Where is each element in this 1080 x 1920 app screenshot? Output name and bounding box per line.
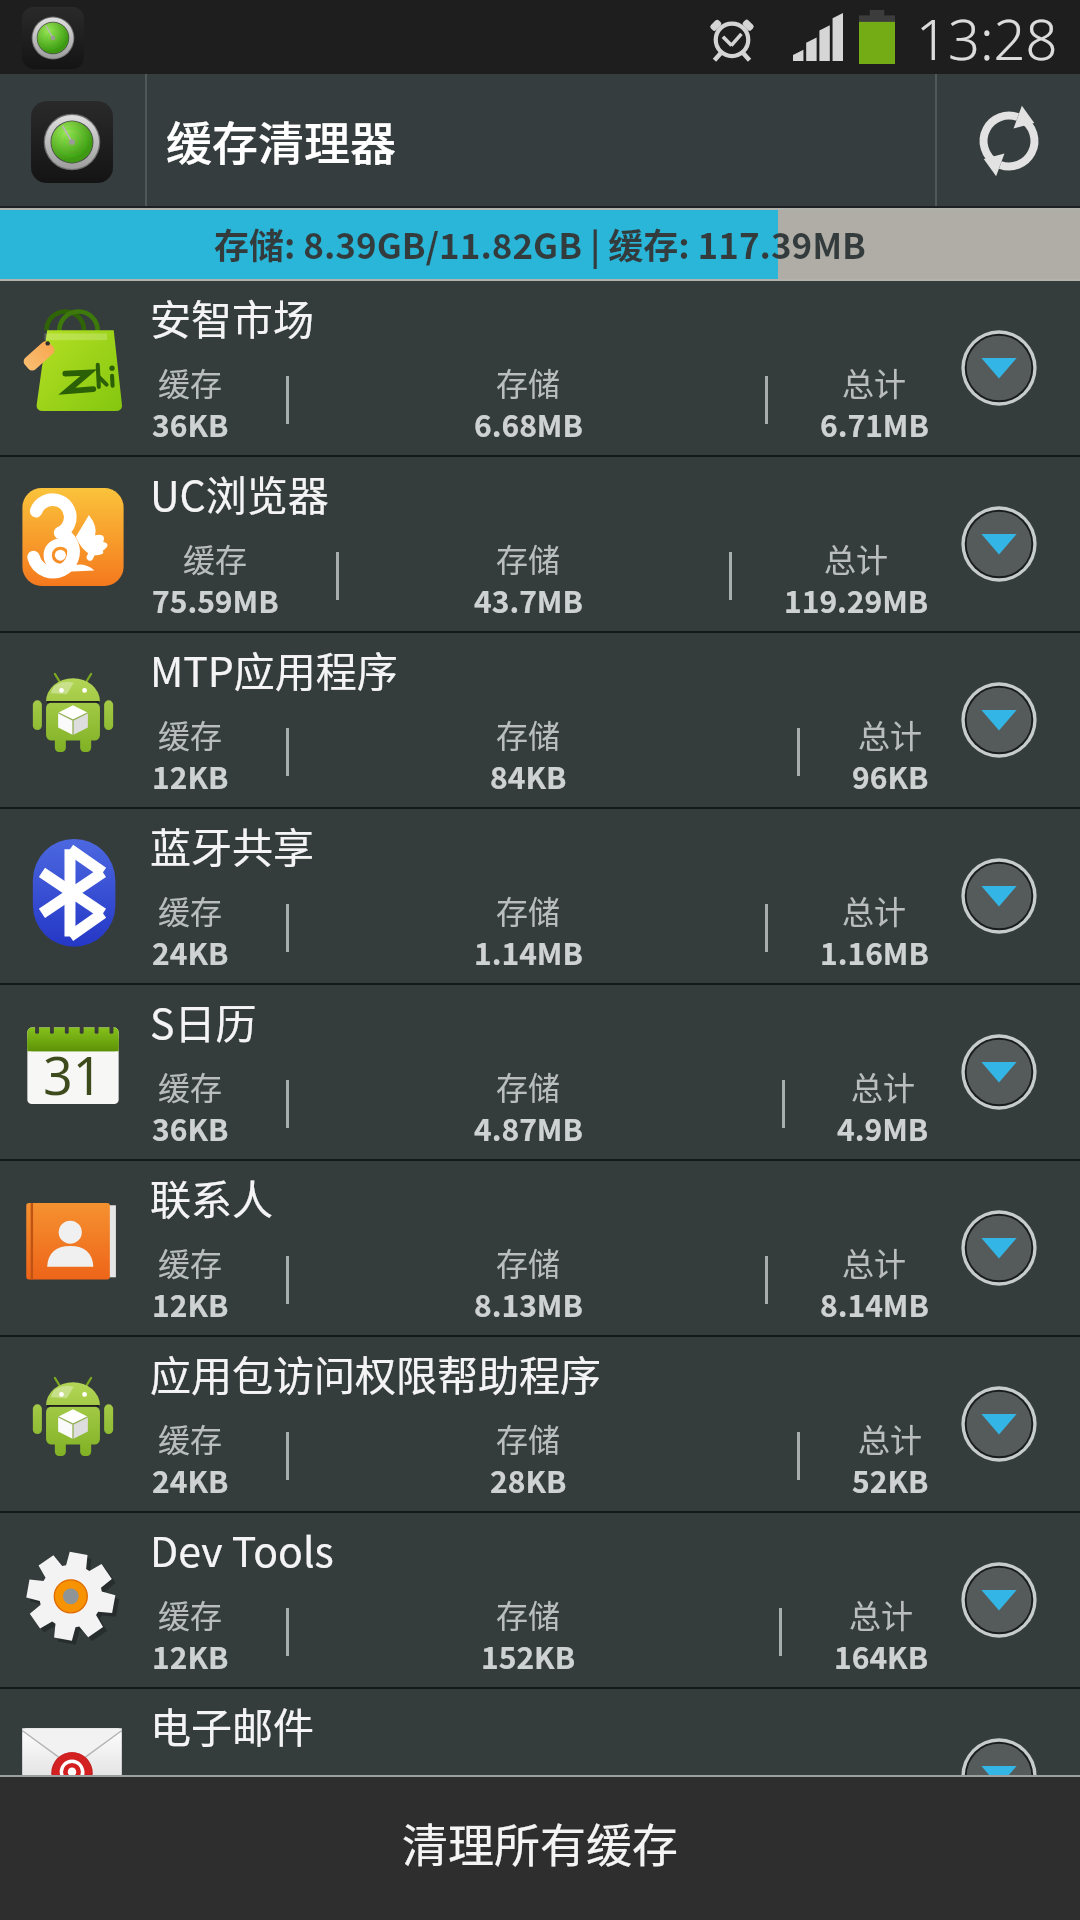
staticText: 24KB <box>152 930 229 973</box>
staticText: 应用包访问权限帮助程序 <box>150 1343 601 1402</box>
staticText: 8.14MB <box>820 1282 929 1325</box>
button[interactable]: Expand details <box>957 502 1041 586</box>
staticText: 12KB <box>152 754 229 797</box>
staticText: 12KB <box>152 1634 229 1677</box>
staticText: 存储 <box>496 1063 561 1109</box>
staticText: 存储 <box>496 1415 561 1461</box>
staticText: 164KB <box>834 1634 929 1677</box>
staticText: 84KB <box>490 754 567 797</box>
staticText: 52KB <box>852 1458 929 1501</box>
staticText: 缓存 <box>158 887 223 933</box>
staticText: 缓存 <box>158 711 223 757</box>
staticText: S日历 <box>150 991 257 1050</box>
staticText: 缓存清理器 <box>166 107 396 174</box>
button[interactable]: 清理所有缓存 <box>0 1775 1080 1920</box>
staticText: 总计 <box>851 1063 916 1109</box>
button[interactable]: Expand details <box>957 678 1041 762</box>
staticText: 8.13MB <box>474 1282 583 1325</box>
staticText: 6.68MB <box>474 402 583 445</box>
staticText: 存储 <box>496 711 561 757</box>
staticText: 1.14MB <box>474 930 583 973</box>
staticText: 存储 <box>496 1239 561 1285</box>
staticText: 31 <box>43 1039 103 1110</box>
staticText: 电子邮件 <box>150 1695 314 1754</box>
staticText: 4.9MB <box>837 1106 929 1149</box>
button[interactable]: 电子邮件 <box>0 1689 1080 1809</box>
staticText: 96KB <box>852 754 929 797</box>
staticText: 联系人 <box>150 1167 273 1226</box>
staticText: 152KB <box>481 1634 576 1677</box>
staticText: 总计 <box>842 359 907 405</box>
staticText: 缓存 <box>158 359 223 405</box>
button[interactable]: UC浏览器 <box>0 457 1080 633</box>
button[interactable]: Expand details <box>957 1382 1041 1466</box>
button[interactable]: Refresh <box>937 74 1080 208</box>
staticText: 总计 <box>858 1415 923 1461</box>
button[interactable]: 安智市场 <box>0 281 1080 457</box>
staticText: 安智市场 <box>150 287 314 346</box>
staticText: 119.29MB <box>784 578 929 621</box>
staticText: 总计 <box>842 1239 907 1285</box>
staticText: Dev Tools <box>150 1519 334 1578</box>
staticText: 75.59MB <box>152 578 279 621</box>
button[interactable]: 应用包访问权限帮助程序 <box>0 1337 1080 1513</box>
button[interactable]: Expand details <box>957 1030 1041 1114</box>
button[interactable]: Dev Tools <box>0 1513 1080 1689</box>
button[interactable]: MTP应用程序 <box>0 633 1080 809</box>
staticText: 蓝牙共享 <box>150 815 314 874</box>
staticText: 存储 <box>496 1591 561 1637</box>
staticText: 存储: 8.39GB/11.82GB | 缓存: 117.39MB <box>214 218 866 269</box>
staticText: 缓存 <box>158 1591 223 1637</box>
staticText: 24KB <box>152 1458 229 1501</box>
staticText: 36KB <box>152 402 229 445</box>
staticText: 存储 <box>496 535 561 581</box>
staticText: 存储 <box>496 887 561 933</box>
button[interactable]: 31 <box>0 985 1080 1161</box>
button[interactable]: 联系人 <box>0 1161 1080 1337</box>
staticText: UC浏览器 <box>150 463 329 522</box>
staticText: 清理所有缓存 <box>402 1809 678 1876</box>
staticText: 缓存 <box>183 535 248 581</box>
staticText: 缓存 <box>158 1239 223 1285</box>
staticText: 13:28 <box>916 0 1058 74</box>
staticText: 总计 <box>858 711 923 757</box>
button[interactable]: Expand details <box>957 1558 1041 1642</box>
staticText: 1.16MB <box>820 930 929 973</box>
staticText: 总计 <box>842 887 907 933</box>
staticText: 43.7MB <box>474 578 583 621</box>
staticText: MTP应用程序 <box>150 639 398 698</box>
staticText: 4.87MB <box>474 1106 583 1149</box>
staticText: 总计 <box>824 535 889 581</box>
staticText: 存储 <box>496 359 561 405</box>
button[interactable]: Expand details <box>957 854 1041 938</box>
staticText: 缓存 <box>158 1415 223 1461</box>
button[interactable]: 蓝牙共享 <box>0 809 1080 985</box>
staticText: 12KB <box>152 1282 229 1325</box>
button[interactable]: Expand details <box>957 1206 1041 1290</box>
staticText: 36KB <box>152 1106 229 1149</box>
staticText: 6.71MB <box>820 402 929 445</box>
button[interactable]: Expand details <box>957 326 1041 410</box>
staticText: 缓存 <box>158 1063 223 1109</box>
staticText: 总计 <box>849 1591 914 1637</box>
staticText: 28KB <box>490 1458 567 1501</box>
